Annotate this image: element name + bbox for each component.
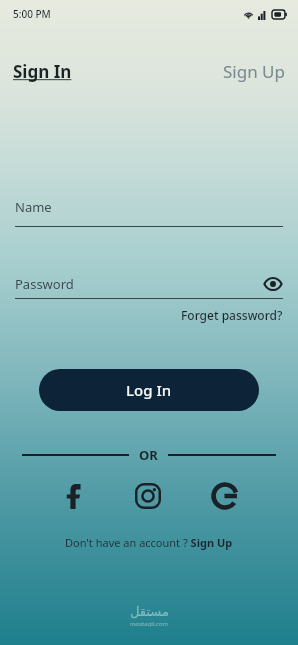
button[interactable]: Show password xyxy=(263,274,283,294)
staticText: مستقل xyxy=(130,604,169,619)
button[interactable]: Sign In xyxy=(13,60,72,83)
staticText: Sign Up xyxy=(223,60,285,83)
staticText: Name xyxy=(15,198,52,216)
button[interactable]: Log In xyxy=(39,369,259,411)
staticText: Don't have an account ? Sign Up xyxy=(65,535,233,550)
button[interactable]: Sign in with Google xyxy=(208,479,242,513)
staticText: Password xyxy=(15,275,74,293)
button[interactable]: Sign in with Facebook xyxy=(56,479,90,513)
button[interactable]: Don't have an account ? Sign Up xyxy=(65,535,233,550)
button[interactable]: Sign Up xyxy=(223,60,285,83)
staticText: mostaqil.com xyxy=(130,620,169,628)
staticText: 5:00 PM xyxy=(13,7,51,21)
button[interactable]: Name xyxy=(15,198,283,227)
staticText: Forget password? xyxy=(181,307,283,323)
staticText: Log In xyxy=(126,380,172,400)
button[interactable]: Forget password? xyxy=(181,307,283,323)
staticText: OR xyxy=(139,446,158,464)
button[interactable]: Password xyxy=(15,274,283,299)
button[interactable]: Sign in with Instagram xyxy=(131,479,165,513)
staticText: Sign In xyxy=(13,60,72,83)
